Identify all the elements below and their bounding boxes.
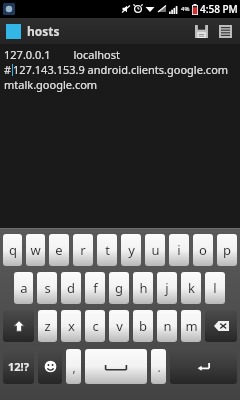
button[interactable]: s [37,272,57,304]
staticText: i [177,241,181,259]
button[interactable]: Emoji [38,349,62,384]
button[interactable]: p [217,234,237,266]
staticText: u [151,241,160,259]
button[interactable]: a [14,272,33,304]
staticText: a [20,279,28,297]
staticText: p [223,241,231,259]
staticText: m [185,317,198,335]
staticText: c [92,317,99,335]
button[interactable]: y [121,234,141,266]
staticText: z [44,317,51,335]
button[interactable]: r [73,234,93,266]
staticText: s [44,279,51,297]
button[interactable]: k [181,272,201,304]
staticText: h [139,279,148,297]
button[interactable]: Enter [170,349,237,384]
staticText: 12!? [8,359,29,374]
staticText: 4% [181,5,190,13]
staticText: x [68,317,75,335]
button[interactable]: h [133,272,153,304]
button[interactable]: u [145,234,165,266]
button[interactable]: f [85,272,105,304]
button[interactable]: Save [188,18,214,44]
staticText: w [30,241,41,259]
staticText: hosts [27,23,60,39]
button[interactable]: m [181,310,201,342]
button[interactable]: n [157,310,177,342]
button[interactable]: Backspace [205,310,237,342]
button[interactable]: Shift [3,310,34,342]
staticText: r [80,241,86,259]
staticText: q [9,241,17,259]
button[interactable]: 12!? [3,349,34,384]
button[interactable]: Menu [214,18,236,44]
staticText: 4:58 PM [200,2,238,16]
button[interactable]: Space [85,349,147,384]
button[interactable]: o [193,234,213,266]
button[interactable]: z [38,310,57,342]
staticText: b [139,317,147,335]
button[interactable]: . [151,349,166,384]
staticText: k [188,279,195,297]
button[interactable]: g [109,272,129,304]
button[interactable]: w [26,234,45,266]
staticText: v [116,317,123,335]
staticText: j [165,279,169,297]
button[interactable]: i [169,234,189,266]
staticText: o [199,241,207,259]
staticText: . [157,359,161,375]
button[interactable]: q [3,234,22,266]
button[interactable]: t [97,234,117,266]
staticText: d [67,279,75,297]
staticText: f [93,279,98,297]
button[interactable]: x [61,310,81,342]
staticText: mtalk.google.com [4,77,98,92]
staticText: t [105,241,110,259]
staticText: , [72,359,76,375]
staticText: 127.0.0.1 localhost [4,47,120,62]
button[interactable]: j [157,272,177,304]
button[interactable]: c [85,310,105,342]
staticText: # [4,62,12,77]
button[interactable]: v [109,310,129,342]
staticText: 127.143.153.9 android.clients.google.com [13,62,229,77]
staticText: y [128,241,135,259]
button[interactable]: e [49,234,69,266]
staticText: g [115,279,123,297]
staticText: l [213,279,217,297]
staticText: e [55,241,63,259]
button[interactable]: b [133,310,153,342]
staticText: n [163,317,172,335]
button[interactable]: d [61,272,81,304]
button[interactable]: , [66,349,81,384]
button[interactable]: l [205,272,225,304]
